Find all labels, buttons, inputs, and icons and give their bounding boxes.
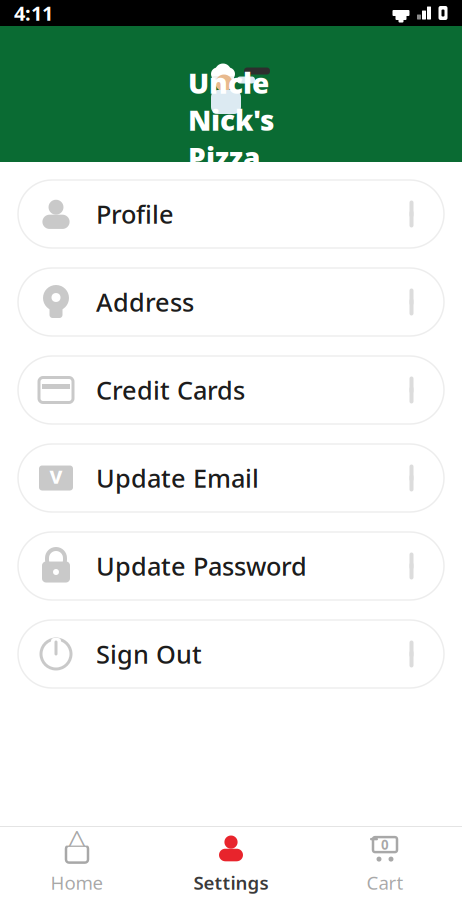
staticText: Cart — [366, 870, 403, 895]
staticText: 0 — [381, 836, 389, 853]
staticText: Update Password — [96, 549, 307, 583]
staticText: v — [49, 460, 62, 490]
button[interactable]: Address — [18, 268, 444, 336]
button[interactable]: ^ — [0, 826, 154, 900]
button[interactable]: v — [18, 444, 444, 512]
button[interactable]: Update Password — [18, 532, 444, 600]
staticText: Home — [50, 870, 103, 895]
button[interactable]: Credit Cards — [18, 356, 444, 424]
staticText: ^ — [67, 820, 87, 866]
staticText: Sign Out — [96, 637, 202, 671]
staticText: Profile — [96, 197, 174, 231]
button[interactable]: Sign Out — [18, 620, 444, 688]
staticText: Uncle Nick's Pizza — [188, 64, 274, 176]
staticText: Update Email — [96, 461, 259, 495]
button[interactable]: Settings — [154, 826, 308, 900]
button[interactable]: Profile — [18, 180, 444, 248]
staticText: 4:11 — [14, 0, 53, 26]
staticText: Address — [96, 285, 194, 319]
button[interactable]: 0 — [308, 826, 462, 900]
staticText: Settings — [193, 870, 268, 895]
staticText: Credit Cards — [96, 373, 245, 407]
